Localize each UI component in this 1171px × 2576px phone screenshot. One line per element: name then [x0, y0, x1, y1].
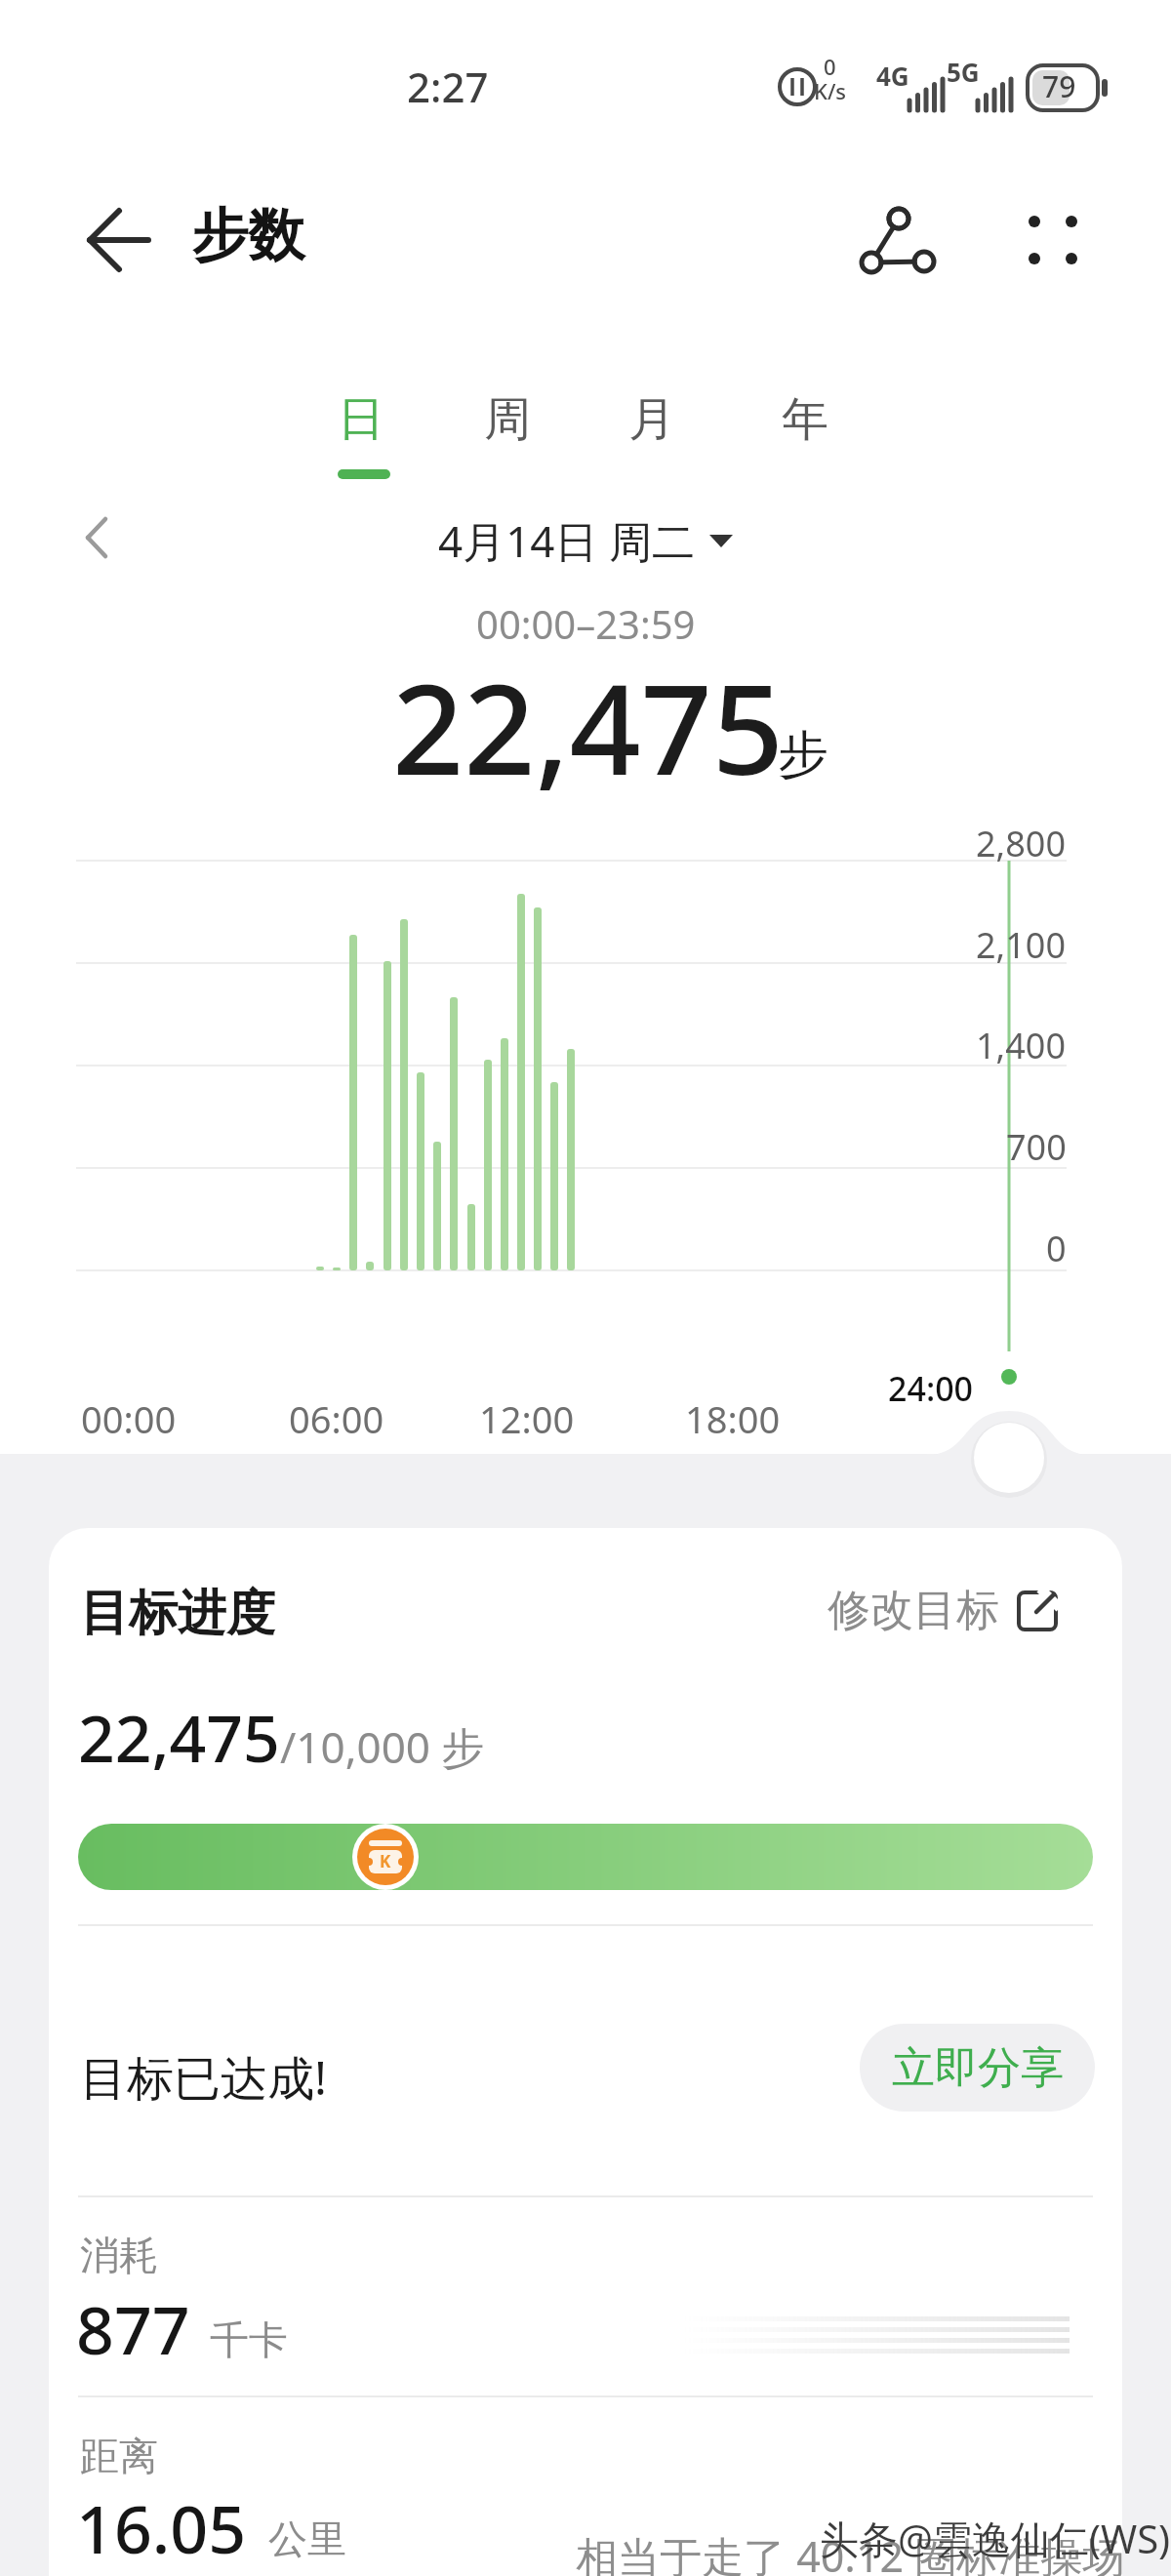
staticText: 千卡 [210, 2315, 288, 2364]
button[interactable]: 周 [454, 390, 561, 488]
staticText: 22,475 [78, 1693, 280, 1781]
staticText: 周 [484, 390, 531, 449]
staticText: 4月14日 周二 [438, 511, 695, 570]
staticText: 相当于走了 40.12 圈标准操场 [576, 2527, 1125, 2576]
staticText: 22,475 [392, 641, 785, 811]
staticText: 距离 [80, 2432, 158, 2480]
staticText: 1,400 [976, 1022, 1067, 1069]
staticText: 12:00 [479, 1393, 575, 1444]
staticText: 2,800 [976, 820, 1067, 867]
staticText: 修改目标 [828, 1584, 999, 1637]
staticText: 公里 [268, 2515, 346, 2563]
staticText: 立即分享 [892, 2041, 1064, 2095]
button[interactable] [1015, 200, 1093, 278]
button[interactable]: 年 [751, 390, 859, 488]
staticText: 消耗 [80, 2231, 158, 2279]
staticText: 步 [778, 723, 828, 787]
button[interactable] [974, 1423, 1044, 1493]
button[interactable]: 月 [598, 390, 706, 488]
button[interactable]: 修改目标 [828, 1581, 1060, 1639]
button[interactable]: 4月14日 周二 [438, 511, 734, 570]
staticText: 877 [76, 2283, 190, 2374]
staticText: 79 [1042, 66, 1076, 106]
staticText: 18:00 [685, 1393, 781, 1444]
button[interactable]: 立即分享 [860, 2024, 1095, 2112]
staticText: 年 [782, 390, 828, 449]
staticText: 2:27 [407, 59, 489, 114]
button[interactable] [849, 195, 947, 288]
staticText: /10,000 步 [280, 1717, 485, 1776]
button[interactable] [68, 205, 162, 275]
button[interactable] [68, 507, 127, 566]
staticText: 0 [1046, 1225, 1067, 1272]
staticText: 00:00–23:59 [476, 597, 696, 650]
staticText: 日 [338, 390, 384, 449]
staticText: K/s [814, 76, 847, 105]
staticText: 16.05 [76, 2482, 247, 2573]
staticText: 5G [947, 55, 980, 89]
button[interactable]: 日 [307, 390, 415, 488]
staticText: 2,100 [976, 921, 1067, 969]
staticText: 目标进度 [80, 1583, 275, 1644]
staticText: 步数 [191, 200, 304, 271]
staticText: 0 [824, 52, 836, 81]
staticText: 00:00 [81, 1393, 177, 1444]
staticText: K [380, 1850, 391, 1872]
staticText: 目标已达成! [80, 2045, 327, 2110]
staticText: 头条@雲逸仙仁(WS) [820, 2512, 1171, 2565]
staticText: 月 [628, 390, 675, 449]
staticText: 06:00 [289, 1393, 384, 1444]
staticText: 700 [1006, 1123, 1067, 1171]
staticText: 24:00 [888, 1366, 974, 1411]
staticText: 4G [876, 59, 909, 93]
